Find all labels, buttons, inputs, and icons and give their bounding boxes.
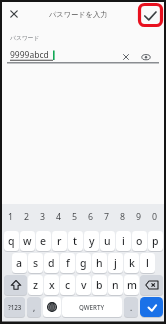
button[interactable]: 2: [19, 204, 35, 230]
button[interactable]: v: [76, 275, 91, 295]
staticText: q: [8, 234, 15, 248]
staticText: f: [66, 256, 70, 270]
staticText: 9999abcd: [10, 49, 49, 61]
staticText: 9: [136, 211, 142, 223]
staticText: j: [114, 256, 117, 270]
button[interactable]: 3: [35, 204, 51, 230]
button[interactable]: o: [132, 231, 147, 251]
staticText: i: [122, 234, 125, 248]
button[interactable]: l: [140, 253, 155, 273]
staticText: QWERTY: [79, 303, 105, 311]
button[interactable]: t: [68, 231, 83, 251]
staticText: g: [80, 256, 87, 270]
button[interactable]: p: [148, 231, 163, 251]
staticText: .: [130, 302, 133, 313]
button[interactable]: 4: [51, 204, 67, 230]
button[interactable]: ?123: [4, 297, 25, 317]
button[interactable]: [139, 50, 153, 64]
staticText: t: [73, 234, 78, 248]
button[interactable]: h: [92, 253, 107, 273]
staticText: v: [81, 278, 87, 292]
button[interactable]: QWERTY: [62, 297, 122, 317]
staticText: ?123: [8, 303, 22, 311]
button[interactable]: 8: [115, 204, 131, 230]
button[interactable]: d: [44, 253, 59, 273]
button[interactable]: m: [124, 275, 139, 295]
button[interactable]: n: [108, 275, 123, 295]
staticText: u: [104, 234, 111, 248]
button[interactable]: b: [92, 275, 107, 295]
staticText: 7: [104, 211, 110, 223]
staticText: 3: [40, 211, 46, 223]
staticText: w: [23, 234, 32, 248]
button[interactable]: 6: [83, 204, 99, 230]
staticText: h: [96, 256, 103, 270]
staticText: l: [146, 256, 149, 270]
button[interactable]: e: [36, 231, 51, 251]
button[interactable]: y: [84, 231, 99, 251]
staticText: パスワード: [10, 34, 40, 41]
button[interactable]: z: [28, 275, 43, 295]
button[interactable]: ,: [27, 297, 41, 317]
staticText: 6: [88, 211, 94, 223]
staticText: m: [127, 278, 137, 292]
staticText: b: [96, 278, 103, 292]
staticText: x: [49, 278, 55, 292]
button[interactable]: f: [60, 253, 75, 273]
staticText: a: [16, 256, 23, 270]
button[interactable]: i: [116, 231, 131, 251]
button[interactable]: 9: [131, 204, 147, 230]
button[interactable]: .: [124, 297, 138, 317]
button[interactable]: g: [76, 253, 91, 273]
button[interactable]: [7, 7, 21, 21]
button[interactable]: 5: [67, 204, 83, 230]
staticText: 5: [72, 211, 78, 223]
button[interactable]: [43, 297, 61, 317]
staticText: ,: [33, 302, 36, 313]
button[interactable]: k: [124, 253, 139, 273]
staticText: 4: [56, 211, 62, 223]
staticText: s: [33, 256, 39, 270]
button[interactable]: a: [12, 253, 27, 273]
button[interactable]: q: [4, 231, 19, 251]
staticText: 1: [8, 211, 14, 223]
staticText: 0: [152, 211, 158, 223]
staticText: d: [48, 256, 55, 270]
staticText: n: [112, 278, 119, 292]
button[interactable]: [4, 275, 27, 295]
button[interactable]: x: [44, 275, 59, 295]
staticText: c: [65, 278, 71, 292]
button[interactable]: r: [52, 231, 67, 251]
button[interactable]: [119, 50, 133, 64]
button[interactable]: 0: [147, 204, 163, 230]
staticText: 8: [120, 211, 126, 223]
staticText: o: [136, 234, 143, 248]
staticText: p: [152, 234, 159, 248]
staticText: e: [40, 234, 47, 248]
button[interactable]: 7: [99, 204, 115, 230]
button[interactable]: u: [100, 231, 115, 251]
staticText: r: [57, 234, 62, 248]
staticText: y: [89, 234, 95, 248]
button[interactable]: [140, 275, 163, 295]
staticText: パスワードを入力: [49, 10, 108, 19]
staticText: 2: [24, 211, 30, 223]
button[interactable]: [138, 3, 163, 27]
button[interactable]: c: [60, 275, 75, 295]
button[interactable]: s: [28, 253, 43, 273]
staticText: k: [129, 256, 135, 270]
button[interactable]: j: [108, 253, 123, 273]
button[interactable]: 1: [3, 204, 19, 230]
button[interactable]: w: [20, 231, 35, 251]
staticText: z: [33, 278, 39, 292]
button[interactable]: [140, 297, 163, 317]
